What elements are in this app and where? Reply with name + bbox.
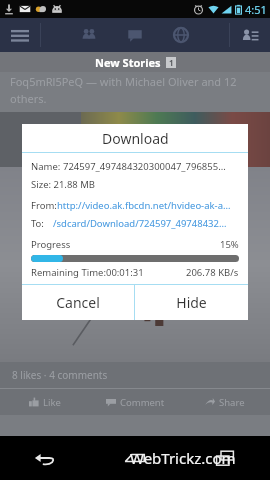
button[interactable]: Like	[0, 389, 90, 415]
staticText: New Stories	[95, 55, 161, 70]
staticText: Foq5mRl5PeQ — with Michael Oliver and 12	[10, 74, 237, 89]
staticText: Download	[102, 129, 169, 148]
button[interactable]: Menu	[0, 18, 40, 52]
staticText: Name:	[31, 160, 63, 173]
button[interactable]: Back	[0, 436, 90, 480]
button[interactable]: Messages	[112, 18, 158, 52]
button[interactable]: Friends	[66, 18, 112, 52]
staticText: To:	[31, 217, 44, 230]
staticText: http://video.ak.fbcdn.net/hvideo-ak-a…	[57, 199, 231, 212]
staticText: 1	[169, 57, 174, 68]
staticText: 206.78 KB/s	[186, 266, 239, 279]
staticText: 8 likes · 4 comments	[12, 368, 108, 382]
button[interactable]: Recents	[180, 436, 270, 480]
button[interactable]: Comment	[90, 389, 180, 415]
button[interactable]: Hide	[135, 285, 248, 320]
button[interactable]: Notifications	[158, 18, 204, 52]
staticText: Remaining Time:00:01:31	[31, 266, 144, 279]
button[interactable]: Cancel	[22, 285, 134, 320]
button[interactable]: Friend requests	[230, 18, 270, 52]
button[interactable]: Home	[90, 436, 180, 480]
button[interactable]: Share	[180, 389, 270, 415]
staticText: 4:51	[245, 2, 267, 17]
button[interactable]: New Stories	[0, 52, 270, 72]
staticText: From:	[31, 199, 57, 212]
staticText: 15%	[220, 238, 239, 251]
staticText: WebTrickz.com	[130, 448, 236, 468]
staticText: 724597_497484320300047_796855…	[63, 160, 226, 173]
staticText: Hide	[176, 293, 207, 312]
staticText: others.	[10, 91, 47, 106]
staticText: Share	[219, 396, 245, 409]
staticText: Size: 21.88 MB	[31, 178, 96, 191]
staticText: Like	[43, 396, 61, 409]
staticText: Cancel	[56, 293, 100, 312]
staticText: Comment	[120, 396, 165, 409]
staticText: Progress	[31, 238, 71, 251]
staticText: /sdcard/Download/724597_49748432…	[53, 217, 227, 230]
